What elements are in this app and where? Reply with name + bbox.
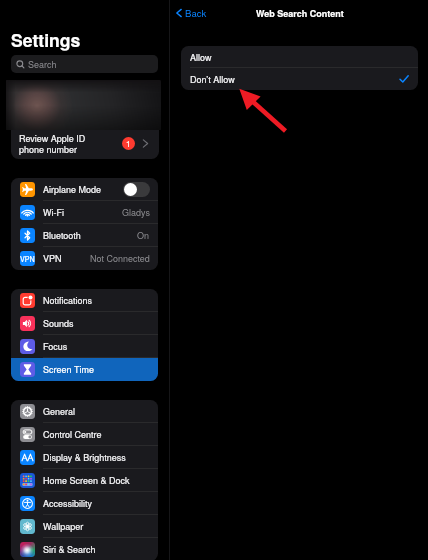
staticText: Don’t Allow: [190, 73, 235, 86]
staticText: Siri & Search: [43, 543, 96, 556]
staticText: 1: [126, 138, 131, 149]
button[interactable]: Accessibility: [11, 492, 158, 515]
staticText: Control Centre: [43, 428, 102, 441]
button[interactable]: Wi-Fi: [11, 201, 158, 224]
staticText: Review Apple ID phone number: [19, 132, 86, 155]
button[interactable]: Home Screen & Dock: [11, 469, 158, 492]
staticText: Screen Time: [43, 363, 94, 376]
button[interactable]: Don’t Allow: [181, 68, 418, 90]
staticText: Wi-Fi: [43, 206, 64, 219]
button[interactable]: Siri & Search: [11, 538, 158, 560]
button[interactable]: Search: [11, 55, 158, 73]
staticText: VPN: [43, 252, 62, 265]
button[interactable]: Wallpaper: [11, 515, 158, 538]
staticText: Notifications: [43, 294, 92, 307]
other: Annotation arrow: [0, 0, 428, 560]
staticText: Gladys: [122, 206, 150, 219]
button[interactable]: Bluetooth: [11, 224, 158, 247]
button[interactable]: Notifications: [11, 289, 158, 312]
staticText: Search: [28, 58, 57, 71]
button[interactable]: Airplane Mode: [11, 178, 158, 201]
staticText: Accessibility: [43, 497, 92, 510]
staticText: Wallpaper: [43, 520, 84, 533]
button[interactable]: Allow: [181, 46, 418, 68]
button[interactable]: Screen Time: [11, 358, 158, 381]
staticText: Not Connected: [90, 252, 150, 265]
staticText: Web Search Content: [256, 7, 344, 20]
staticText: Focus: [43, 340, 68, 353]
staticText: Back: [185, 6, 207, 20]
staticText: On: [137, 229, 150, 242]
staticText: Allow: [190, 51, 212, 64]
button[interactable]: Back: [172, 4, 209, 22]
button[interactable]: [6, 80, 161, 130]
button[interactable]: Review Apple ID phone number: [11, 130, 159, 159]
staticText: General: [43, 405, 75, 418]
staticText: Display & Brightness: [43, 451, 126, 464]
staticText: Settings: [11, 27, 81, 52]
button[interactable]: VPN: [11, 247, 158, 270]
button[interactable]: General: [11, 400, 158, 423]
staticText: Sounds: [43, 317, 74, 330]
button[interactable]: Sounds: [11, 312, 158, 335]
button[interactable]: Display & Brightness: [11, 446, 158, 469]
staticText: Home Screen & Dock: [43, 474, 130, 487]
button[interactable]: Control Centre: [11, 423, 158, 446]
button[interactable]: Focus: [11, 335, 158, 358]
staticText: Airplane Mode: [43, 183, 102, 196]
staticText: VPN: [20, 254, 35, 264]
staticText: Bluetooth: [43, 229, 81, 242]
